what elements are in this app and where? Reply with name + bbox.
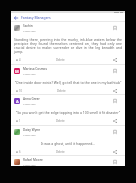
staticText: Rafael Moore [23,158,43,162]
button[interactable]: Share [113,89,117,93]
staticText: It was a ghost, until it happened... [14,141,122,146]
staticText: Standing there, peering into the murky, … [14,37,122,54]
staticText: 3 days ago [23,133,36,136]
staticText: "One inside door exists? Well, go tell t… [14,80,122,85]
staticText: "So you won't get the edge topping into … [14,110,122,115]
button[interactable]: Save [113,99,117,103]
staticText: Fantasy Managers [21,15,51,20]
button[interactable]: Save [113,26,117,30]
staticText: 3 days ago [23,72,36,75]
button[interactable]: Save [113,160,117,164]
staticText: 10 [19,89,22,93]
button[interactable]: Delete [56,150,65,154]
button[interactable]: Share [113,119,117,123]
staticText: Sachin [23,24,33,28]
button[interactable]: Like [16,119,21,123]
staticText: Marissa Cosmos [23,67,48,71]
button[interactable]: Like [16,150,21,154]
staticText: M [15,69,19,74]
staticText: Daisy Wynn [23,128,41,132]
staticText: 3 days ago [23,163,36,166]
button[interactable]: Save [113,130,117,134]
button[interactable]: Delete [56,119,65,123]
button[interactable]: Share [113,58,117,62]
staticText: Anna Greer [23,97,40,101]
button[interactable]: Like [16,58,21,62]
staticText: 1 [19,119,21,123]
staticText: 6 [19,150,21,154]
staticText: 3 days ago [23,29,36,32]
button[interactable]: Delete [56,58,65,62]
button[interactable]: Share [113,150,117,154]
button[interactable]: Back [13,15,18,20]
button[interactable]: Delete [57,89,66,93]
button[interactable]: Like [16,89,22,93]
button[interactable]: Save [113,69,117,73]
staticText: 3 days ago [23,102,36,105]
staticText: A [16,99,19,104]
staticText: 4 [19,58,21,62]
